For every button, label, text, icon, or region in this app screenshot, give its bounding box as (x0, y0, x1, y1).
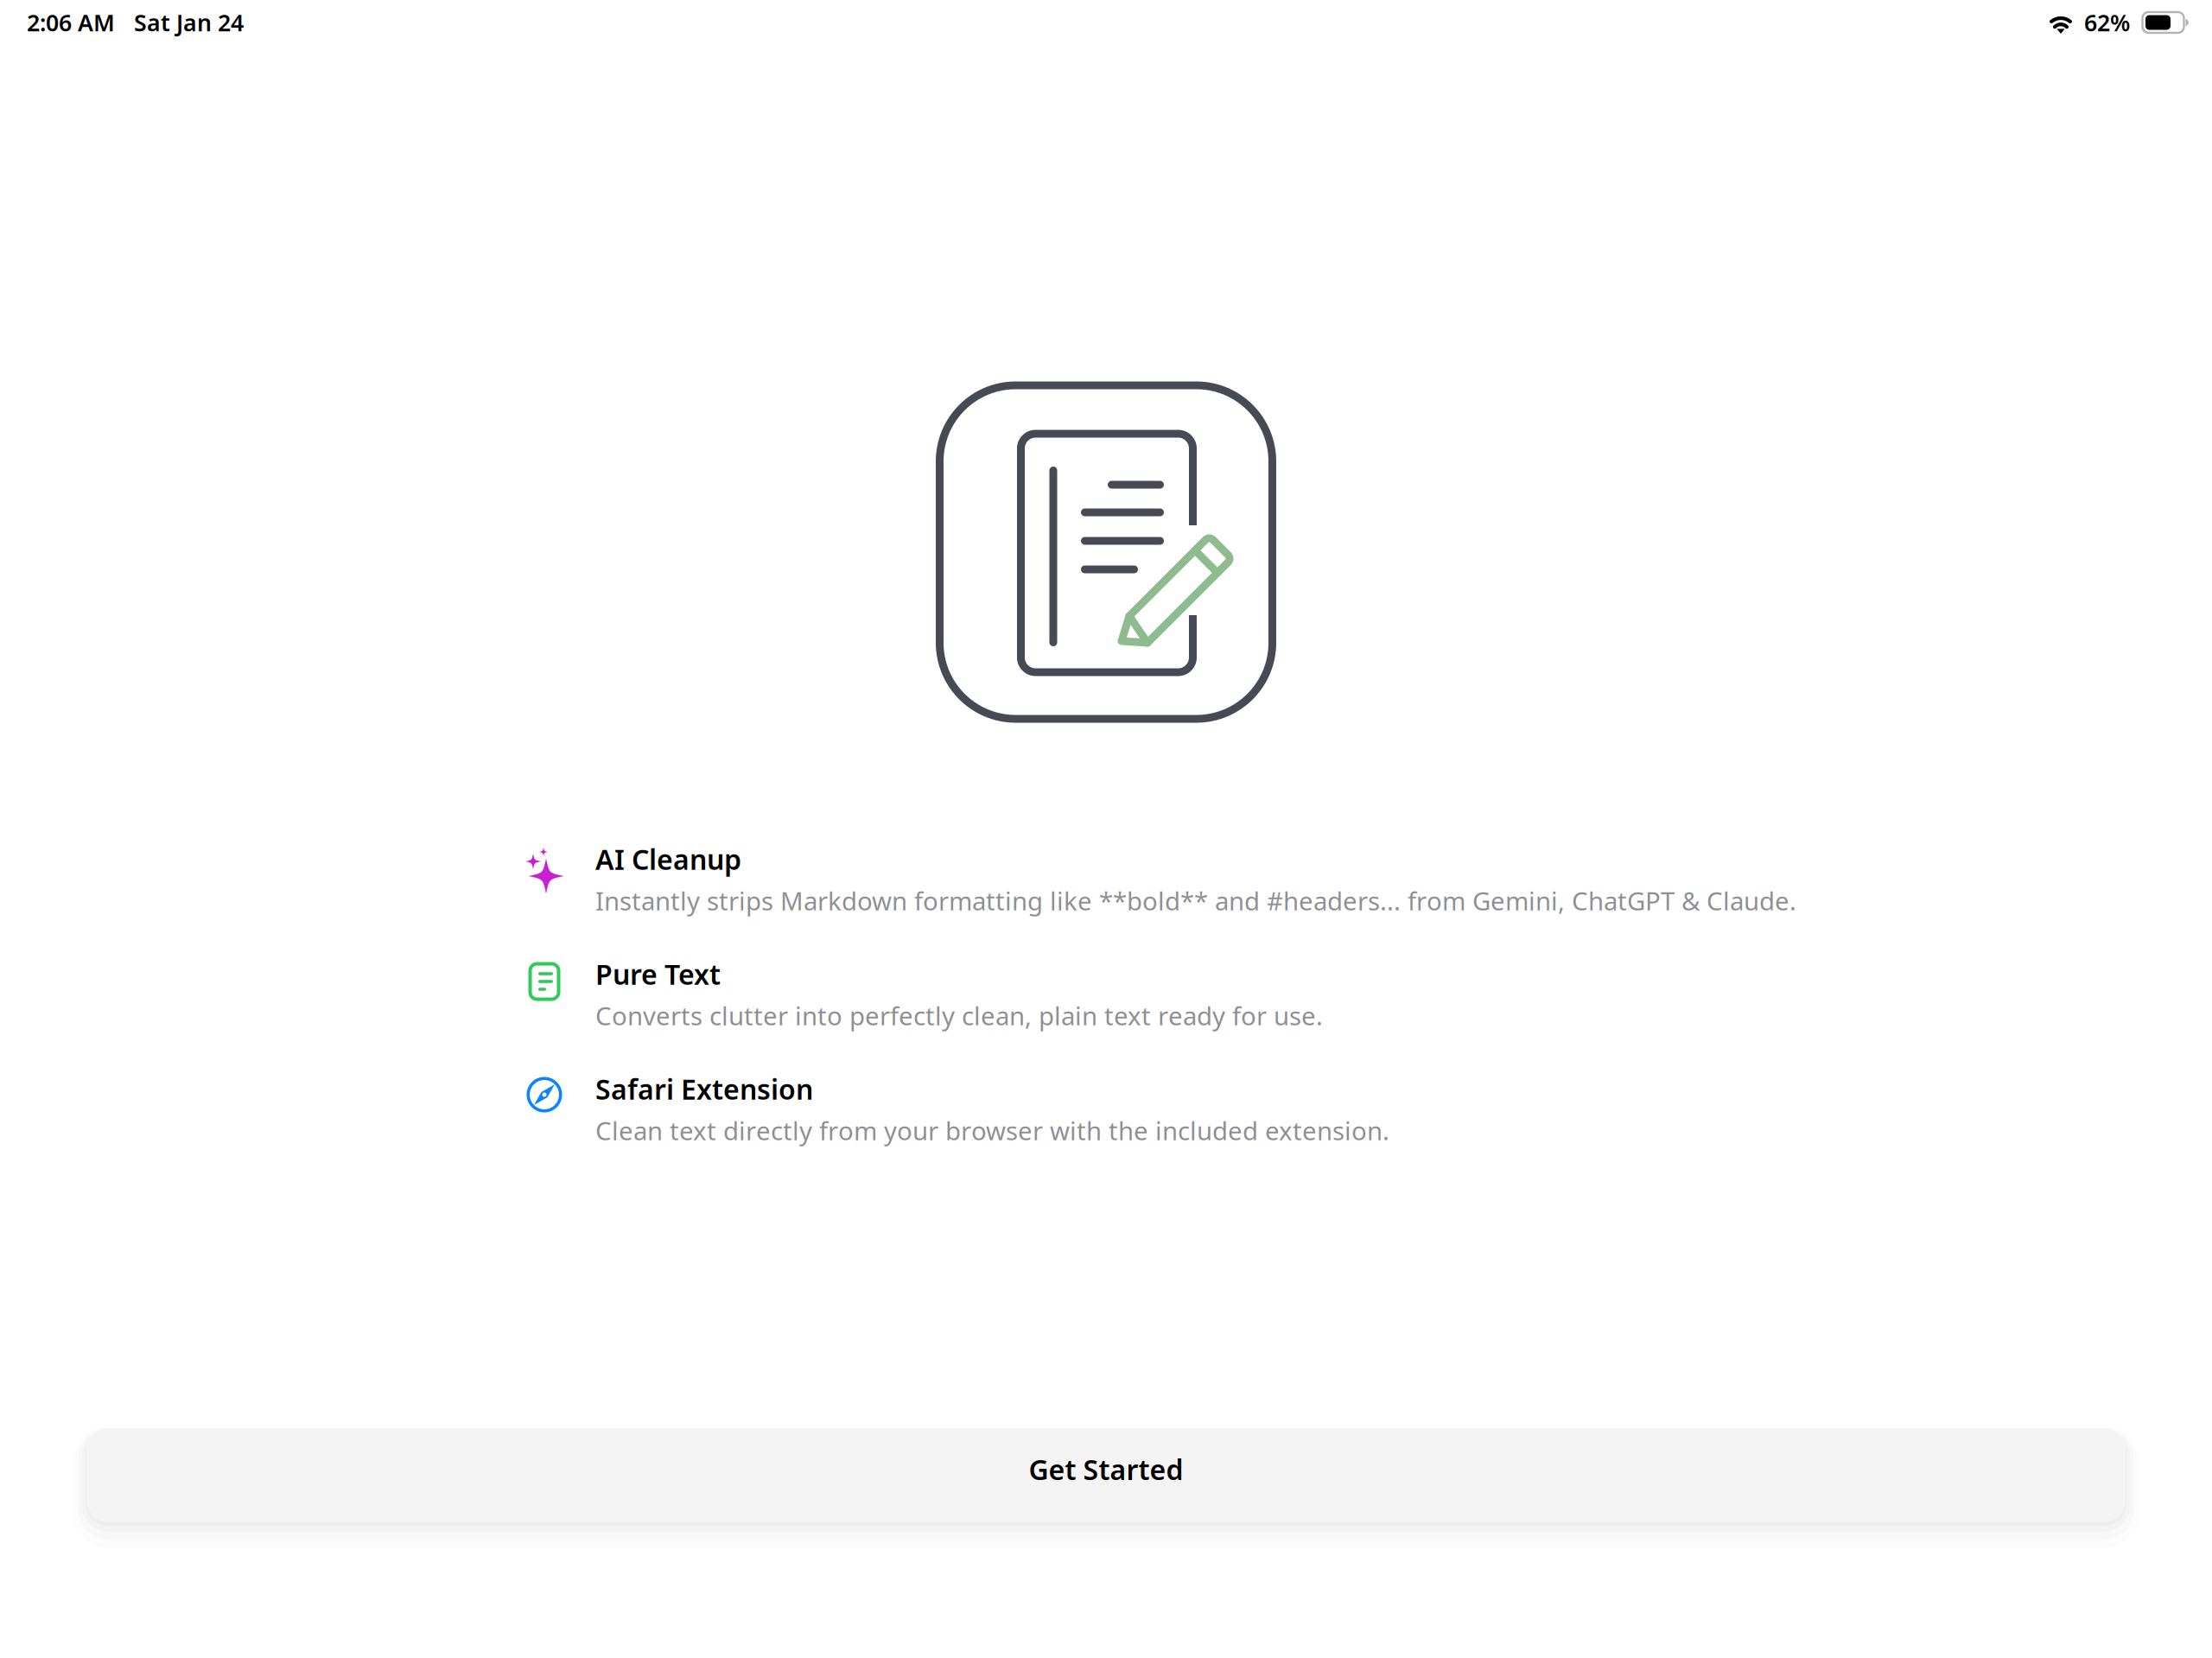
staticText: Pure Text (595, 956, 721, 992)
staticText: Instantly strips Markdown formatting lik… (595, 884, 1796, 918)
staticText: Get Started (1029, 1451, 1183, 1488)
staticText: Converts clutter into perfectly clean, p… (595, 999, 1323, 1032)
staticText: 2:06 AM (27, 7, 115, 38)
staticText: Clean text directly from your browser wi… (595, 1114, 1389, 1147)
staticText: 62% (2084, 7, 2130, 38)
staticText: AI Cleanup (595, 841, 741, 877)
button[interactable]: Get Started (86, 1428, 2126, 1522)
staticText: Safari Extension (595, 1070, 813, 1107)
staticText: Sat Jan 24 (134, 7, 244, 38)
